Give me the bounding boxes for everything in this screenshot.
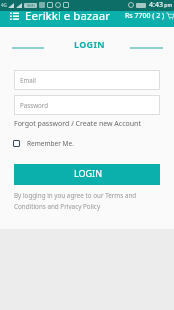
button[interactable]: Cart (125, 11, 174, 21)
button[interactable]: Remember Me. (13, 139, 74, 148)
staticText: Remember Me. (27, 139, 74, 148)
button[interactable]: LOGIN (14, 164, 160, 185)
staticText: LOGIN (74, 38, 105, 50)
button[interactable]: Menu (0, 12, 25, 21)
staticText: Conditions and Privacy Policy (14, 202, 101, 211)
staticText: 4:43 (149, 0, 163, 10)
staticText: By logging in you agree to our Terms and (14, 191, 137, 200)
button[interactable]: Password (14, 95, 160, 115)
staticText: Password (20, 101, 48, 109)
staticText: 4G (1, 2, 7, 8)
staticText: Email (20, 76, 36, 84)
staticText: pm (163, 2, 173, 9)
staticText: LOGIN (74, 167, 103, 179)
staticText: Forgot password / Create new Account (14, 119, 141, 128)
button[interactable]: Email (14, 70, 160, 90)
staticText: Rs 7700 ( 2 ) (125, 11, 165, 21)
staticText: Eerikki e bazaar (25, 8, 110, 24)
button[interactable]: Forgot password / Create new Account (14, 119, 141, 128)
staticText: WiFi (27, 3, 35, 8)
